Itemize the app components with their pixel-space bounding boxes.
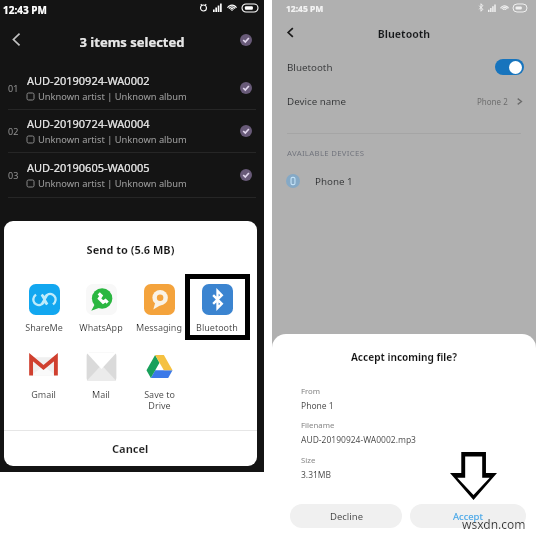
button[interactable]: ShareMe bbox=[16, 284, 72, 333]
staticText: AVAILABLE DEVICES bbox=[287, 148, 365, 159]
staticText: WhatsApp bbox=[79, 321, 123, 333]
staticText: Phone 1 bbox=[301, 400, 334, 412]
button[interactable]: Decline bbox=[290, 504, 402, 528]
staticText: Bluetooth bbox=[196, 321, 238, 333]
staticText: wsxdn.com bbox=[462, 516, 526, 532]
button[interactable]: Select all bbox=[228, 22, 264, 58]
staticText: Filename bbox=[301, 420, 335, 431]
button[interactable]: Cancel bbox=[4, 431, 257, 466]
button[interactable]: Mail bbox=[73, 351, 129, 400]
button[interactable]: Back bbox=[0, 23, 33, 56]
button[interactable]: Back bbox=[274, 16, 307, 49]
staticText: Accept bbox=[453, 510, 483, 523]
staticText: 12:43 PM bbox=[3, 3, 47, 17]
staticText: Messaging bbox=[136, 321, 182, 333]
staticText: Bluetooth bbox=[272, 27, 536, 41]
button[interactable]: Device name bbox=[287, 84, 524, 118]
staticText: From bbox=[301, 386, 321, 397]
staticText: Decline bbox=[330, 510, 363, 523]
staticText: AUD-20190924-WA0002.mp3 bbox=[301, 434, 416, 446]
button[interactable]: Bluetooth bbox=[287, 50, 524, 84]
staticText: Unknown artist | Unknown album bbox=[38, 133, 187, 146]
button[interactable]: WhatsApp bbox=[73, 284, 129, 333]
staticText: 3 items selected bbox=[0, 33, 264, 51]
button[interactable]: Phone 1 bbox=[286, 168, 536, 194]
staticText: Save to Drive bbox=[144, 388, 175, 412]
staticText: Size bbox=[301, 455, 316, 466]
staticText: Send to (5.6 MB) bbox=[4, 242, 257, 257]
staticText: Unknown artist | Unknown album bbox=[38, 90, 187, 103]
staticText: Device name bbox=[287, 95, 346, 108]
button[interactable]: 02 bbox=[0, 109, 264, 152]
staticText: AUD-20190924-WA0002 bbox=[27, 73, 150, 88]
button[interactable]: Save to Drive bbox=[131, 351, 187, 412]
staticText: AUD-20190724-WA0004 bbox=[27, 116, 150, 131]
staticText: Mail bbox=[92, 388, 110, 400]
staticText: 02 bbox=[8, 125, 19, 137]
button[interactable]: 03 bbox=[0, 153, 264, 196]
staticText: 01 bbox=[8, 82, 19, 94]
staticText: Phone 2 bbox=[477, 96, 508, 107]
staticText: Gmail bbox=[31, 388, 56, 400]
button[interactable]: Gmail bbox=[15, 351, 71, 400]
staticText: Cancel bbox=[112, 441, 149, 456]
staticText: ShareMe bbox=[25, 321, 63, 333]
staticText: 3.31MB bbox=[301, 469, 332, 481]
button[interactable]: Accept bbox=[410, 504, 526, 528]
staticText: 12:45 PM bbox=[286, 3, 324, 15]
button[interactable]: Messaging bbox=[131, 284, 187, 333]
staticText: AUD-20190605-WA0005 bbox=[27, 160, 150, 175]
staticText: Unknown artist | Unknown album bbox=[38, 177, 187, 190]
staticText: 03 bbox=[8, 169, 19, 181]
staticText: Bluetooth bbox=[287, 61, 333, 74]
button[interactable]: Bluetooth bbox=[189, 284, 245, 333]
button[interactable]: 01 bbox=[0, 66, 264, 109]
staticText: Phone 1 bbox=[315, 175, 353, 188]
staticText: Accept incoming file? bbox=[272, 350, 536, 364]
